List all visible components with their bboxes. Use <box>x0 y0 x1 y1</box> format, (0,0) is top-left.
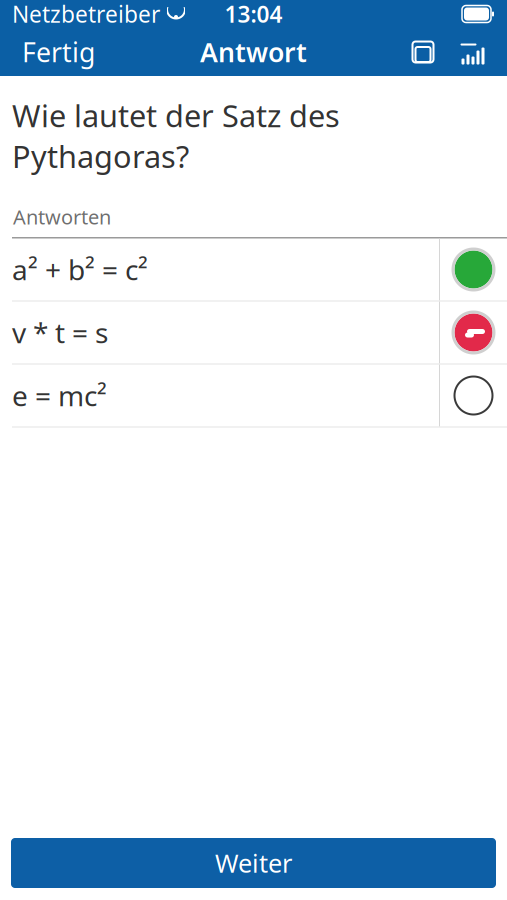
button[interactable]: Weiter <box>11 838 496 888</box>
staticText: Netzbetreiber <box>12 0 160 29</box>
button[interactable]: a² + b² = c² <box>0 238 507 300</box>
staticText: Antworten <box>13 203 111 230</box>
staticText: a² + b² = c² <box>12 251 148 288</box>
button[interactable]: e = mc² <box>0 364 507 426</box>
staticText: e = mc² <box>12 377 107 414</box>
staticText: Fertig <box>22 34 95 70</box>
staticText: v * t = s <box>12 314 108 351</box>
button[interactable]: Favorit <box>405 34 441 70</box>
button[interactable]: v * t = s <box>0 301 507 363</box>
staticText: Weiter <box>215 846 292 880</box>
button[interactable]: Fertig <box>12 26 105 78</box>
button[interactable]: Statistik <box>455 34 491 70</box>
staticText: 13:04 <box>224 0 282 29</box>
staticText: Antwort <box>200 34 307 70</box>
staticText: Wie lautet der Satz des Pythagoras? <box>12 95 340 176</box>
